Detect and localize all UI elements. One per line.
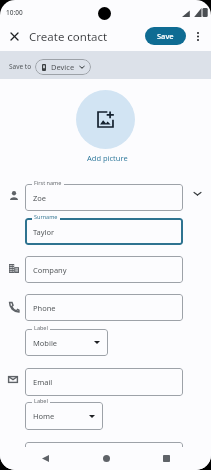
- button[interactable]: Back: [33, 446, 57, 470]
- staticText: First name: [34, 179, 62, 186]
- button[interactable]: [25, 402, 103, 430]
- staticText: Create contact: [29, 29, 108, 45]
- staticText: Device: [51, 62, 75, 72]
- staticText: Zoe: [33, 193, 47, 203]
- button[interactable]: Close: [2, 24, 26, 48]
- staticText: Home: [33, 411, 55, 421]
- button[interactable]: Home: [94, 446, 118, 470]
- button[interactable]: [25, 442, 183, 469]
- staticText: Save: [157, 31, 174, 41]
- button[interactable]: [25, 184, 183, 211]
- staticText: Label: [34, 397, 48, 404]
- button[interactable]: [25, 368, 183, 396]
- button[interactable]: [25, 256, 183, 283]
- button[interactable]: [25, 329, 108, 356]
- staticText: Email: [33, 377, 53, 387]
- staticText: Label: [34, 324, 48, 331]
- button[interactable]: Expand name fields: [190, 186, 204, 200]
- button[interactable]: Add picture: [76, 90, 135, 149]
- button[interactable]: Device: [35, 59, 91, 75]
- button[interactable]: Recent apps: [154, 446, 178, 470]
- staticText: Phone: [33, 303, 56, 313]
- button[interactable]: [25, 218, 183, 245]
- staticText: Save to: [9, 62, 32, 71]
- staticText: Company: [33, 265, 67, 275]
- staticText: Taylor: [33, 227, 55, 237]
- button[interactable]: [25, 294, 183, 321]
- staticText: Mobile: [33, 338, 58, 348]
- button[interactable]: More options: [190, 28, 206, 44]
- staticText: 10:00: [6, 8, 23, 17]
- button[interactable]: Save: [145, 27, 186, 45]
- staticText: Surname: [34, 213, 58, 220]
- staticText: Add picture: [87, 153, 128, 163]
